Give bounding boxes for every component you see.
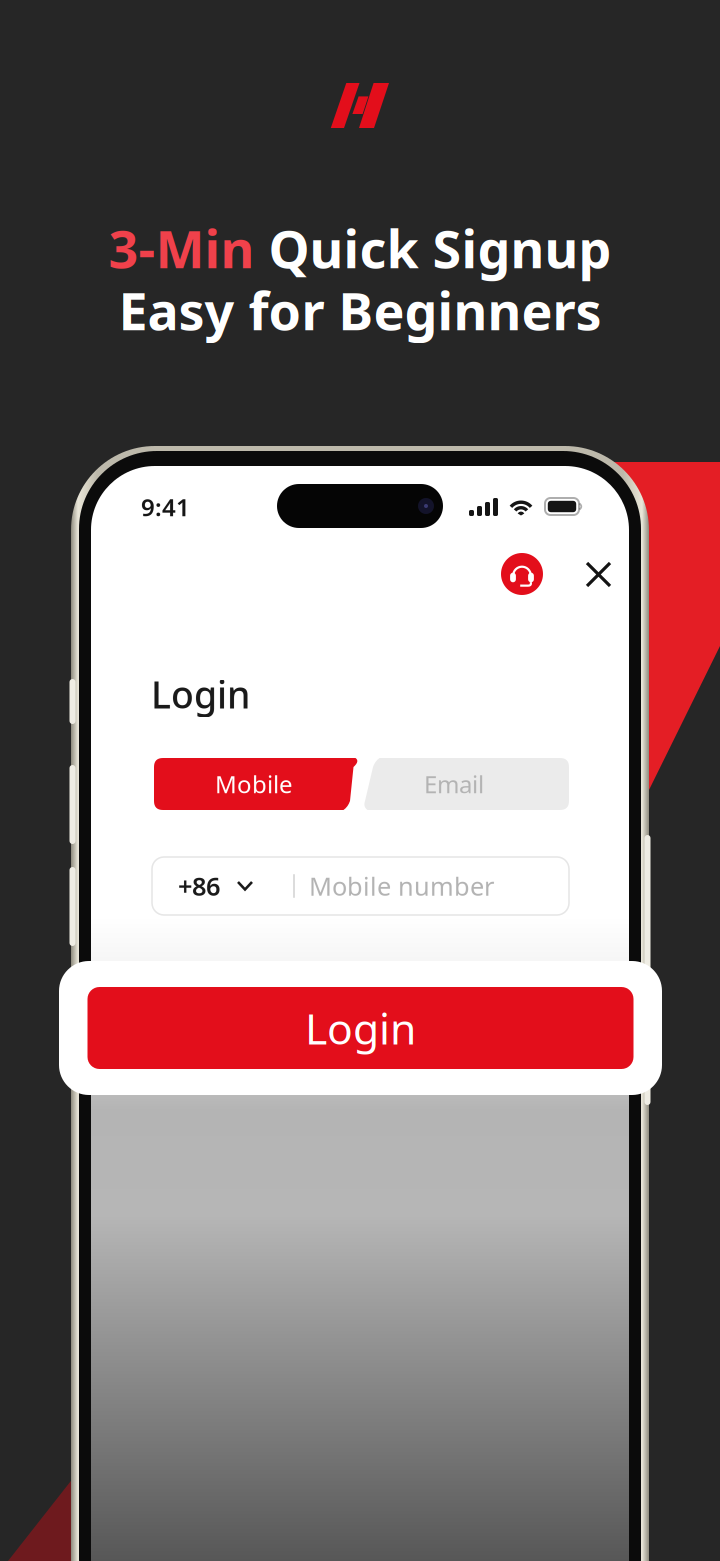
staticText: +86 [178,869,220,903]
staticText: 9:41 [141,491,190,523]
button[interactable]: Login [59,961,662,1095]
staticText: Email [424,768,484,800]
staticText: Quick Signup [268,213,611,283]
button[interactable]: Close [570,546,627,603]
button[interactable]: Mobile [154,758,360,810]
button[interactable]: Customer support [496,548,548,600]
staticText: Login [305,1000,416,1056]
staticText: 3-Min [108,213,268,283]
staticText: Login [151,669,250,719]
staticText: Mobile number [309,869,494,903]
button[interactable]: Email [363,758,569,810]
staticText: Mobile [215,768,293,800]
staticText: Easy for Beginners [118,275,601,345]
